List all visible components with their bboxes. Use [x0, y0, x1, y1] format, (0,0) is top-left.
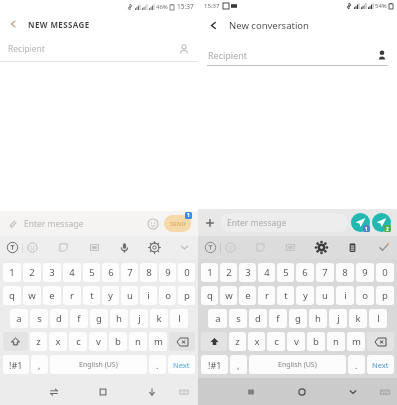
button[interactable]: 5 [277, 263, 294, 282]
button[interactable]: Emoji [26, 241, 39, 254]
button[interactable]: Text mode [6, 241, 19, 254]
button[interactable]: SEND [164, 215, 191, 232]
button[interactable]: c [267, 332, 285, 351]
button[interactable]: 2 [23, 263, 41, 282]
button[interactable]: Hide keyboard [146, 386, 158, 398]
button[interactable]: w [23, 286, 41, 305]
button[interactable]: f [269, 309, 287, 328]
button[interactable]: Collapse [178, 241, 191, 254]
button[interactable]: 9 [356, 263, 374, 282]
button[interactable]: t [277, 286, 294, 305]
button[interactable]: 4 [63, 263, 81, 282]
button[interactable]: !#1 [201, 355, 228, 374]
button[interactable] [201, 332, 227, 351]
button[interactable]: y [102, 286, 119, 305]
button[interactable]: 8 [140, 263, 157, 282]
button[interactable]: f [70, 309, 88, 328]
button[interactable]: 6 [296, 263, 314, 282]
button[interactable]: y [296, 286, 314, 305]
button[interactable]: i [140, 286, 157, 305]
button[interactable]: 0 [376, 263, 394, 282]
button[interactable]: d [249, 309, 267, 328]
button[interactable]: l [369, 309, 387, 328]
button[interactable]: 3 [43, 263, 61, 282]
button[interactable]: d [50, 309, 68, 328]
button[interactable]: w [220, 286, 237, 305]
button[interactable]: Back [347, 386, 359, 398]
button[interactable]: n [129, 332, 147, 351]
button[interactable]: z [229, 332, 246, 351]
button[interactable]: GIF [284, 241, 297, 254]
button[interactable]: 1 [3, 263, 21, 282]
button[interactable]: Text mode [204, 241, 217, 254]
button[interactable]: Back [0, 12, 198, 36]
button[interactable]: h [110, 309, 128, 328]
button[interactable]: Clipboard [346, 241, 359, 254]
button[interactable]: j [130, 309, 148, 328]
button[interactable]: Voice input [118, 241, 131, 254]
button[interactable]: 7 [316, 263, 334, 282]
button[interactable]: v [287, 332, 305, 351]
button[interactable]: . [348, 355, 365, 374]
button[interactable]: p [376, 286, 394, 305]
button[interactable]: a [208, 309, 227, 328]
button[interactable]: Next [168, 355, 195, 374]
button[interactable]: Recents [97, 386, 109, 398]
button[interactable]: p [178, 286, 195, 305]
button[interactable]: Attach [7, 218, 18, 229]
button[interactable]: g [90, 309, 108, 328]
button[interactable]: k [349, 309, 367, 328]
button[interactable]: e [43, 286, 61, 305]
button[interactable]: 4 [258, 263, 275, 282]
button[interactable]: English (US) [249, 355, 346, 374]
button[interactable]: s [30, 309, 48, 328]
button[interactable]: Back [198, 12, 397, 38]
button[interactable]: b [307, 332, 325, 351]
button[interactable]: z [30, 332, 47, 351]
button[interactable]: u [121, 286, 138, 305]
button[interactable]: GIF [88, 241, 101, 254]
button[interactable]: g [289, 309, 307, 328]
button[interactable]: q [201, 286, 218, 305]
button[interactable]: Settings [315, 241, 328, 254]
button[interactable] [367, 332, 394, 351]
button[interactable]: Emoji [224, 241, 237, 254]
button[interactable]: r [63, 286, 81, 305]
button[interactable]: x [49, 332, 67, 351]
button[interactable]: u [316, 286, 334, 305]
button[interactable]: n [327, 332, 345, 351]
button[interactable]: Send SIM 1 [351, 213, 370, 232]
button[interactable]: m [149, 332, 167, 351]
button[interactable]: m [347, 332, 365, 351]
button[interactable]: , [31, 355, 48, 374]
button[interactable]: e [239, 286, 256, 305]
button[interactable]: q [3, 286, 21, 305]
button[interactable]: !#1 [3, 355, 29, 374]
button[interactable]: Recents [245, 386, 257, 398]
button[interactable]: o [159, 286, 176, 305]
button[interactable]: Switch keyboard [48, 386, 60, 398]
button[interactable]: Settings [148, 241, 161, 254]
button[interactable]: Keyboard [178, 386, 190, 398]
button[interactable]: Done [377, 241, 390, 254]
button[interactable]: r [258, 286, 275, 305]
button[interactable] [3, 332, 28, 351]
button[interactable]: 5 [83, 263, 100, 282]
button[interactable]: 9 [159, 263, 176, 282]
button[interactable]: Send SIM 2 [372, 213, 391, 232]
button[interactable]: t [83, 286, 100, 305]
button[interactable]: h [309, 309, 327, 328]
button[interactable]: 1 [201, 263, 218, 282]
button[interactable]: Keyboard [379, 386, 391, 398]
button[interactable]: o [356, 286, 374, 305]
button[interactable]: 0 [178, 263, 195, 282]
button[interactable]: Recipient [0, 36, 198, 62]
button[interactable]: Recipient [198, 44, 397, 66]
button[interactable]: s [229, 309, 247, 328]
button[interactable]: k [150, 309, 168, 328]
button[interactable]: . [149, 355, 166, 374]
button[interactable]: Stickers [254, 241, 267, 254]
button[interactable]: Next [367, 355, 394, 374]
button[interactable]: 7 [121, 263, 138, 282]
button[interactable]: Emoji [147, 218, 159, 230]
